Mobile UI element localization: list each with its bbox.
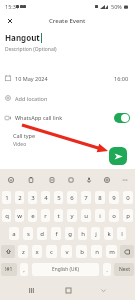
staticText: Create Event (49, 17, 86, 25)
button[interactable]: o (109, 209, 119, 222)
staticText: k (107, 230, 111, 238)
staticText: s (27, 230, 30, 238)
button[interactable]: c (46, 245, 57, 258)
button[interactable]: !#1 (1, 263, 17, 276)
staticText: q (5, 212, 9, 220)
staticText: 2 (18, 194, 22, 202)
button[interactable]: b (76, 245, 87, 258)
button[interactable]: Shift (1, 245, 15, 258)
staticText: y (70, 212, 74, 220)
staticText: 9 (112, 194, 116, 202)
staticText: b (80, 248, 84, 256)
button[interactable]: Backspace (120, 245, 134, 258)
button[interactable]: a (9, 227, 19, 240)
button[interactable]: u (81, 209, 91, 222)
button[interactable]: n (91, 245, 102, 258)
staticText: l (121, 230, 123, 238)
button[interactable]: j (91, 227, 100, 240)
button[interactable]: s (23, 227, 33, 240)
button[interactable]: Hide keyboard (96, 283, 110, 297)
button[interactable]: 10 May 2024 (0, 70, 135, 86)
staticText: e (31, 212, 35, 220)
staticText: f (55, 230, 58, 238)
staticText: !#1 (5, 266, 13, 273)
button[interactable]: Emoji (5, 174, 17, 186)
button[interactable]: y (67, 209, 77, 222)
button[interactable]: Translate (65, 174, 77, 186)
staticText: g (68, 230, 72, 238)
staticText: a (12, 230, 16, 238)
staticText: 50% (111, 3, 122, 10)
staticText: o (112, 212, 116, 220)
button[interactable]: z (18, 245, 28, 258)
button[interactable]: 0 (123, 191, 133, 204)
staticText: English (UK) (52, 266, 79, 273)
button[interactable]: Next (114, 263, 134, 276)
button[interactable]: . (103, 263, 111, 276)
staticText: n (95, 248, 99, 256)
button[interactable]: r (41, 209, 50, 222)
staticText: Add location (15, 95, 48, 102)
staticText: v (65, 248, 69, 256)
staticText: 3 (31, 194, 35, 202)
button[interactable]: e (28, 209, 37, 222)
staticText: 7 (84, 194, 88, 202)
button[interactable]: x (32, 245, 42, 258)
staticText: Hangout (5, 32, 40, 43)
staticText: 6 (70, 194, 74, 202)
button[interactable]: d (37, 227, 47, 240)
button[interactable]: Stickers (46, 174, 58, 186)
staticText: d (40, 230, 44, 238)
button[interactable]: Settings (101, 174, 113, 186)
button[interactable]: g (65, 227, 74, 240)
button[interactable]: Send (109, 147, 127, 165)
button[interactable]: Close (3, 14, 17, 28)
staticText: 5 (57, 194, 61, 202)
button[interactable]: Recents (24, 283, 38, 297)
button[interactable]: Add location (0, 90, 135, 106)
button[interactable]: , (20, 263, 28, 276)
staticText: Description (Optional) (5, 46, 57, 53)
button[interactable]: p (123, 209, 133, 222)
button[interactable]: 8 (95, 191, 105, 204)
button[interactable]: More options (119, 174, 131, 186)
staticText: Next (119, 266, 130, 273)
staticText: z (22, 248, 25, 256)
staticText: 8 (98, 194, 102, 202)
button[interactable]: m (106, 245, 117, 258)
button[interactable]: 3 (28, 191, 37, 204)
button[interactable]: English (UK) (32, 263, 99, 276)
button[interactable]: 4 (41, 191, 50, 204)
button[interactable]: Toggle WhatsApp call link (114, 113, 130, 123)
button[interactable]: Voice input (83, 174, 95, 186)
button[interactable]: Home (61, 283, 75, 297)
button[interactable]: Call type (0, 130, 135, 150)
staticText: 15:31 (5, 3, 20, 10)
staticText: Video (13, 141, 27, 148)
button[interactable]: v (61, 245, 72, 258)
button[interactable]: h (78, 227, 87, 240)
staticText: h (81, 230, 85, 238)
button[interactable]: q (2, 209, 11, 222)
button[interactable]: Clipboard (25, 174, 37, 186)
button[interactable]: WhatsApp call link (0, 109, 135, 126)
button[interactable]: f (51, 227, 61, 240)
staticText: t (57, 212, 60, 220)
button[interactable]: k (104, 227, 113, 240)
staticText: 16:00 (114, 75, 129, 82)
button[interactable]: 5 (54, 191, 63, 204)
button[interactable]: t (54, 209, 63, 222)
staticText: j (95, 230, 97, 238)
button[interactable]: 7 (81, 191, 91, 204)
staticText: w (17, 212, 22, 220)
button[interactable]: 6 (67, 191, 77, 204)
button[interactable]: 9 (109, 191, 119, 204)
button[interactable]: w (15, 209, 24, 222)
button[interactable]: 2 (15, 191, 24, 204)
button[interactable]: 1 (2, 191, 11, 204)
button[interactable]: i (95, 209, 105, 222)
button[interactable]: l (117, 227, 126, 240)
staticText: u (84, 212, 88, 220)
staticText: Call type (13, 132, 36, 139)
staticText: 4 (44, 194, 48, 202)
